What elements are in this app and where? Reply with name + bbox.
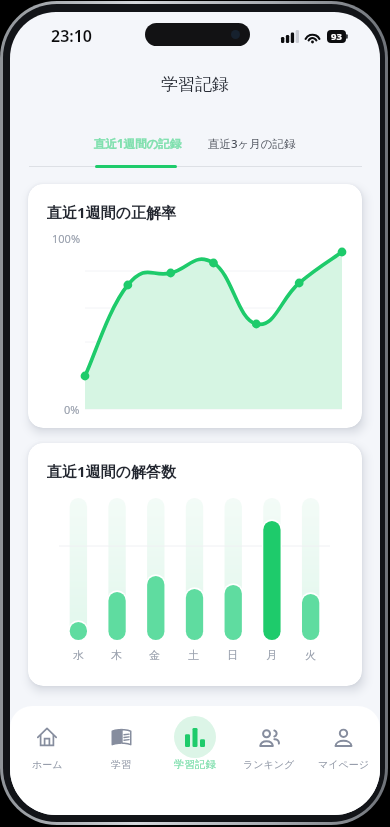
staticText: 23:10 [51, 25, 93, 47]
staticText: 学習記録 [174, 758, 216, 771]
staticText: 木 [111, 648, 122, 662]
other: 学習記録 [185, 728, 205, 747]
button[interactable]: マイページ [306, 706, 380, 778]
staticText: 土 [188, 648, 199, 662]
staticText: 100% [52, 231, 81, 246]
staticText: 火 [305, 648, 316, 662]
button[interactable]: 学習 [84, 706, 158, 778]
staticText: 0% [64, 402, 80, 417]
staticText: 学習 [111, 758, 131, 771]
button[interactable]: ホーム [10, 706, 84, 778]
button[interactable]: 直近3ヶ月の記録 [195, 132, 309, 156]
staticText: 直近1週間の正解率 [47, 202, 176, 222]
staticText: 水 [73, 648, 84, 662]
staticText: ランキング [243, 758, 295, 771]
staticText: マイページ [318, 758, 369, 771]
staticText: 直近3ヶ月の記録 [208, 136, 296, 152]
staticText: 直近1週間の解答数 [47, 461, 176, 481]
staticText: 月 [266, 648, 277, 662]
staticText: 学習記録 [161, 74, 229, 95]
staticText: 直近1週間の記録 [94, 136, 182, 152]
staticText: 金 [149, 648, 160, 662]
button[interactable]: ランキング [232, 706, 306, 778]
button[interactable]: 学習記録 [158, 706, 232, 778]
other: ランキング [259, 727, 280, 748]
other: マイページ [333, 727, 354, 748]
other: ホーム [37, 727, 57, 747]
staticText: ホーム [32, 758, 63, 771]
staticText: 93 [331, 30, 342, 43]
button[interactable]: 直近1週間の記録 [81, 132, 195, 156]
staticText: 日 [227, 648, 238, 662]
other: 学習 [111, 727, 132, 748]
